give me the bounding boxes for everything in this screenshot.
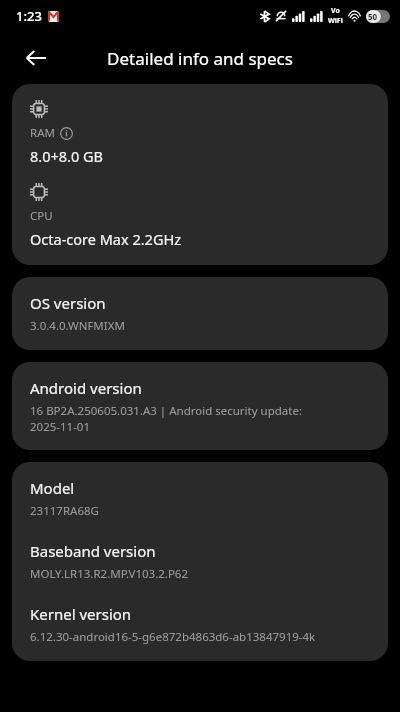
button[interactable]: Back bbox=[14, 36, 58, 80]
staticText: Android version bbox=[30, 378, 142, 398]
staticText: Model bbox=[30, 478, 75, 498]
staticText: 50 bbox=[368, 11, 378, 22]
staticText: 16 BP2A.250605.031.A3 | Android security… bbox=[30, 403, 302, 434]
button[interactable]: OS version bbox=[12, 277, 388, 350]
button[interactable]: Android version bbox=[12, 362, 388, 450]
staticText: 23117RA68G bbox=[30, 503, 99, 519]
staticText: Octa-core Max 2.2GHz bbox=[30, 229, 182, 249]
button[interactable]: Model bbox=[12, 462, 388, 661]
staticText: 1:23 bbox=[16, 7, 42, 25]
staticText: OS version bbox=[30, 293, 106, 313]
staticText: Baseband version bbox=[30, 541, 156, 561]
staticText: 3.0.4.0.WNFMIXM bbox=[30, 318, 125, 334]
staticText: 6.12.30-android16-5-g6e872b4863d6-ab1384… bbox=[30, 629, 316, 645]
staticText: 8.0+8.0 GB bbox=[30, 146, 103, 166]
staticText: RAM bbox=[30, 125, 55, 141]
staticText: WiFi bbox=[328, 16, 343, 26]
staticText: Kernel version bbox=[30, 604, 132, 624]
staticText: Detailed info and specs bbox=[107, 47, 293, 70]
staticText: Vo bbox=[331, 6, 340, 16]
staticText: CPU bbox=[30, 208, 53, 224]
staticText: MOLY.LR13.R2.MP.V103.2.P62 bbox=[30, 566, 188, 582]
button[interactable]: RAM bbox=[12, 84, 388, 265]
